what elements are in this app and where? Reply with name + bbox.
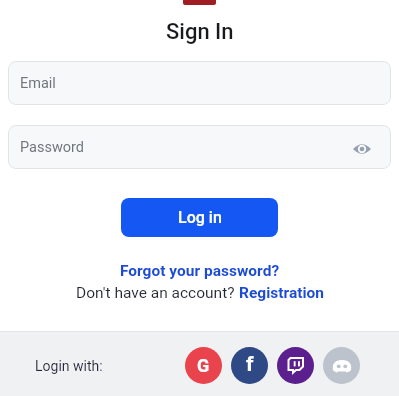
staticText: f [246,352,254,377]
staticText: Password [20,139,85,156]
staticText: Sign In [166,19,234,45]
button[interactable]: Registration [239,284,324,302]
staticText: Don't have an account? [76,284,239,302]
staticText: Forgot your password? [120,262,280,280]
button[interactable]: f [231,347,268,384]
button[interactable]: G [185,347,222,384]
button[interactable]: Forgot your password? [120,262,280,280]
staticText: Login with: [35,358,103,374]
staticText: Registration [239,284,324,302]
button[interactable] [323,347,360,384]
staticText: Email [20,75,56,92]
staticText: G [197,355,210,376]
staticText: Log in [178,208,222,227]
button[interactable] [277,347,314,384]
button[interactable]: Password [8,125,391,169]
button[interactable]: Email [8,61,391,105]
button[interactable]: Log in [121,198,278,237]
